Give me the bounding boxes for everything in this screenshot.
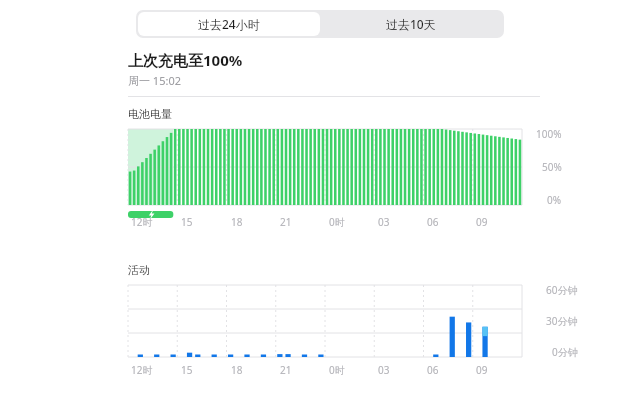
staticText: 21 <box>280 363 292 377</box>
button[interactable]: 过去10天 <box>320 12 502 36</box>
staticText: 09 <box>476 363 488 377</box>
staticText: 30分钟 <box>546 314 578 328</box>
staticText: 18 <box>231 215 243 229</box>
staticText: 21 <box>280 215 292 229</box>
staticText: 03 <box>378 363 390 377</box>
staticText: 周一 15:02 <box>128 73 181 88</box>
staticText: 0时 <box>329 363 345 377</box>
staticText: 0% <box>547 193 562 207</box>
staticText: 09 <box>476 215 488 229</box>
staticText: 电池电量 <box>128 107 172 121</box>
staticText: 03 <box>378 215 390 229</box>
staticText: 100% <box>536 127 562 141</box>
staticText: 活动 <box>128 263 150 277</box>
staticText: 15 <box>181 363 193 377</box>
staticText: 12时 <box>131 215 153 229</box>
staticText: 18 <box>231 363 243 377</box>
staticText: 12时 <box>131 363 153 377</box>
staticText: 06 <box>427 363 439 377</box>
staticText: 上次充电至100% <box>128 50 243 70</box>
button[interactable]: 过去24小时 <box>138 12 320 36</box>
staticText: 0分钟 <box>552 345 578 359</box>
staticText: 06 <box>427 215 439 229</box>
staticText: 15 <box>181 215 193 229</box>
staticText: 60分钟 <box>546 283 578 297</box>
staticText: 过去24小时 <box>198 16 260 32</box>
staticText: 50% <box>542 160 562 174</box>
staticText: 0时 <box>329 215 345 229</box>
staticText: 过去10天 <box>386 16 436 32</box>
